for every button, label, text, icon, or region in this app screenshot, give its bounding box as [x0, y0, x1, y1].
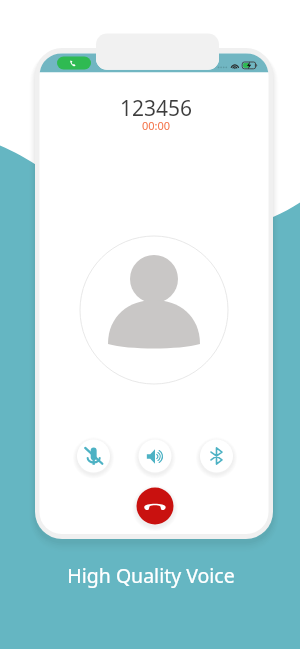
button[interactable]: Speaker: [139, 440, 172, 473]
button[interactable]: Bluetooth: [200, 440, 233, 473]
staticText: High Quality Voice: [1, 562, 300, 588]
button[interactable]: End call: [136, 487, 174, 525]
button[interactable]: Mute: [77, 440, 110, 473]
staticText: 123456: [43, 94, 269, 120]
staticText: 00:00: [43, 118, 269, 134]
